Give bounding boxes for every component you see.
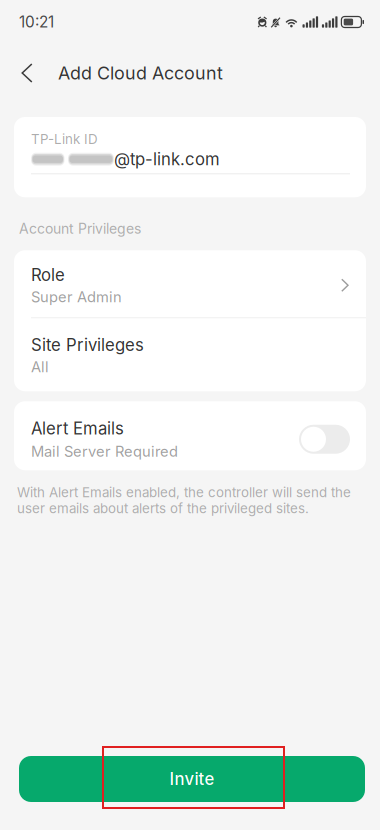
staticText: 10:21: [19, 13, 54, 31]
staticText: Add Cloud Account: [58, 62, 223, 84]
staticText: All: [31, 358, 49, 376]
staticText: With Alert Emails enabled, the controlle…: [17, 484, 351, 516]
staticText: Super Admin: [31, 288, 122, 306]
button[interactable]: Site Privileges: [14, 318, 366, 391]
button[interactable]: Alert Emails: [299, 425, 350, 454]
staticText: Site Privileges: [31, 335, 144, 355]
staticText: Account Privileges: [19, 220, 141, 237]
staticText: Invite: [169, 769, 214, 789]
staticText: Alert Emails: [31, 418, 124, 438]
staticText: TP-Link ID: [31, 131, 98, 147]
button[interactable]: Back: [8, 53, 46, 93]
staticText: Role: [31, 265, 65, 285]
staticText: @tp-link.com: [114, 149, 220, 169]
button[interactable]: Role: [14, 250, 366, 317]
staticText: Mail Server Required: [31, 442, 178, 460]
button[interactable]: Invite: [19, 756, 365, 802]
